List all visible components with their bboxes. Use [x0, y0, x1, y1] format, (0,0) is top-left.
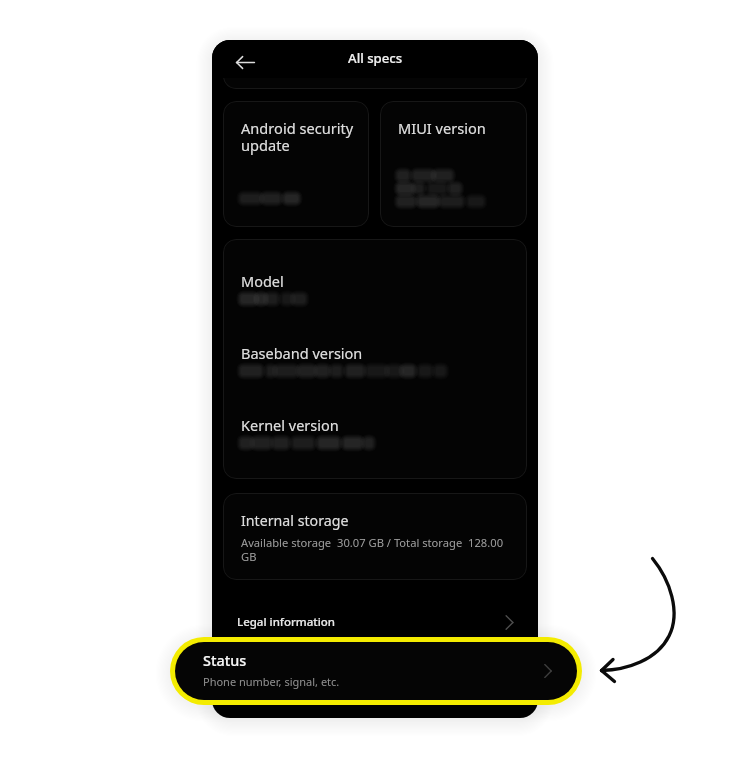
button[interactable]: Model	[223, 239, 527, 479]
staticText: All specs	[348, 49, 403, 67]
staticText: Phone number, signal, etc.	[203, 674, 340, 689]
staticText: Internal storage	[241, 511, 349, 530]
staticText: Kernel version	[241, 415, 339, 435]
staticText: Available storage 30.07 GB / Total stora…	[241, 535, 508, 565]
staticText: Legal information	[237, 614, 336, 630]
staticText: Status	[203, 651, 247, 671]
button[interactable]: Status	[175, 642, 577, 700]
button[interactable]: Android security update	[223, 101, 369, 227]
staticText: MIUI version	[398, 118, 486, 138]
staticText: Model	[241, 271, 284, 291]
button[interactable]: Back	[230, 44, 260, 74]
other: Pointer arrow	[0, 0, 750, 757]
staticText: Baseband version	[241, 343, 363, 363]
button[interactable]: Internal storage	[223, 493, 527, 580]
staticText: Android security update	[241, 118, 354, 155]
button[interactable]: Legal information	[212, 599, 538, 645]
button[interactable]: MIUI version	[380, 101, 527, 227]
